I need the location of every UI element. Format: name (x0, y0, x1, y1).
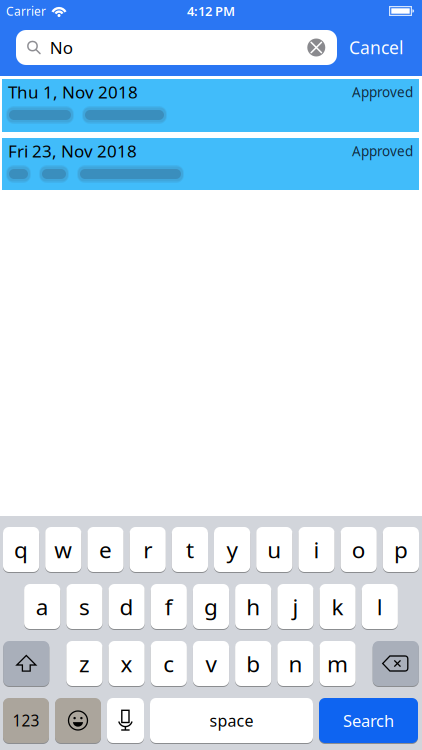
staticText: p (394, 535, 408, 564)
button[interactable]: h (235, 584, 271, 629)
staticText: r (143, 535, 152, 564)
staticText: c (163, 649, 174, 678)
staticText: a (36, 592, 49, 621)
staticText: g (204, 592, 218, 621)
staticText: 4:12 PM (187, 3, 235, 19)
button[interactable]: Numbers (3, 698, 49, 743)
staticText: Approved (352, 142, 413, 160)
staticText: u (267, 535, 281, 564)
staticText: o (352, 535, 366, 564)
button[interactable]: b (235, 641, 271, 686)
staticText: q (14, 535, 28, 564)
button[interactable]: Fri 23, Nov 2018 (2, 138, 419, 190)
button[interactable]: k (319, 584, 356, 629)
button[interactable]: i (298, 527, 335, 572)
staticText: s (79, 592, 90, 621)
button[interactable]: t (172, 527, 208, 572)
staticText: f (165, 592, 173, 621)
button[interactable]: Delete (373, 641, 419, 686)
button[interactable]: l (362, 584, 398, 629)
staticText: m (327, 649, 348, 678)
button[interactable]: j (277, 584, 313, 629)
staticText: t (186, 535, 194, 564)
staticText: k (332, 592, 344, 621)
staticText: n (288, 649, 302, 678)
staticText: y (227, 535, 238, 564)
button[interactable]: Cancel (349, 36, 404, 59)
button[interactable]: y (214, 527, 250, 572)
staticText: Search (343, 710, 394, 731)
staticText: i (313, 535, 319, 564)
button[interactable]: c (151, 641, 187, 686)
button[interactable]: d (108, 584, 145, 629)
staticText: j (292, 592, 298, 621)
button[interactable]: Search (319, 698, 418, 743)
staticText: Fri 23, Nov 2018 (8, 140, 137, 162)
button[interactable]: s (66, 584, 102, 629)
staticText: Approved (352, 83, 413, 101)
button[interactable]: r (130, 527, 166, 572)
staticText: e (99, 535, 112, 564)
button[interactable]: o (341, 527, 377, 572)
staticText: h (246, 592, 260, 621)
staticText: b (246, 649, 260, 678)
staticText: Cancel (349, 36, 404, 59)
staticText: space (209, 710, 253, 731)
button[interactable]: p (383, 527, 419, 572)
button[interactable]: space (150, 698, 313, 743)
button[interactable]: Dictate (107, 698, 144, 743)
button[interactable]: Clear text (306, 37, 327, 58)
button[interactable]: a (24, 584, 60, 629)
button[interactable]: Emoji (55, 698, 101, 743)
staticText: l (377, 592, 383, 621)
staticText: Carrier (6, 3, 46, 19)
staticText: z (79, 649, 90, 678)
button[interactable]: z (66, 641, 102, 686)
staticText: No (50, 36, 73, 58)
button[interactable]: g (193, 584, 229, 629)
staticText: Thu 1, Nov 2018 (8, 81, 138, 103)
button[interactable]: m (319, 641, 356, 686)
button[interactable]: n (277, 641, 313, 686)
staticText: v (205, 649, 216, 678)
staticText: 123 (12, 710, 39, 731)
button[interactable]: q (3, 527, 39, 572)
button[interactable]: u (256, 527, 292, 572)
staticText: w (54, 535, 72, 564)
button[interactable]: e (87, 527, 124, 572)
staticText: d (120, 592, 134, 621)
button[interactable]: w (45, 527, 81, 572)
button[interactable]: x (108, 641, 145, 686)
button[interactable]: Thu 1, Nov 2018 (2, 79, 419, 132)
button[interactable]: v (193, 641, 229, 686)
staticText: x (121, 649, 133, 678)
button[interactable]: Shift (3, 641, 49, 686)
button[interactable]: f (151, 584, 187, 629)
